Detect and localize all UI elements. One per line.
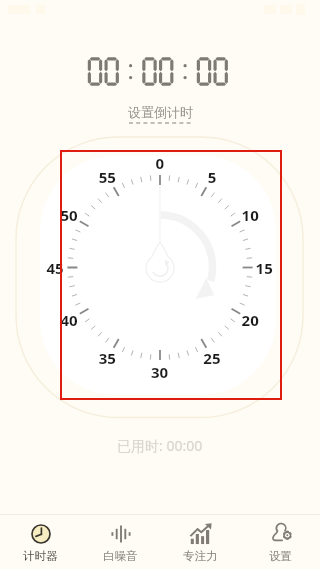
staticText: 白噪音 — [103, 549, 138, 563]
staticText: 已用时: 00:00 — [117, 436, 203, 455]
button[interactable]: 白噪音 — [80, 515, 160, 569]
staticText: 计时器 — [23, 549, 58, 563]
button[interactable]: 计时器 — [0, 515, 80, 569]
button[interactable] — [0, 130, 320, 422]
button[interactable]: 设置倒计时 — [128, 104, 193, 124]
staticText: 设置 — [269, 549, 292, 563]
staticText: 设置倒计时 — [128, 104, 193, 120]
button[interactable]: 设置 — [240, 515, 320, 569]
button[interactable]: 专注力 — [160, 515, 240, 569]
staticText: 专注力 — [183, 549, 218, 563]
button[interactable] — [0, 56, 320, 88]
